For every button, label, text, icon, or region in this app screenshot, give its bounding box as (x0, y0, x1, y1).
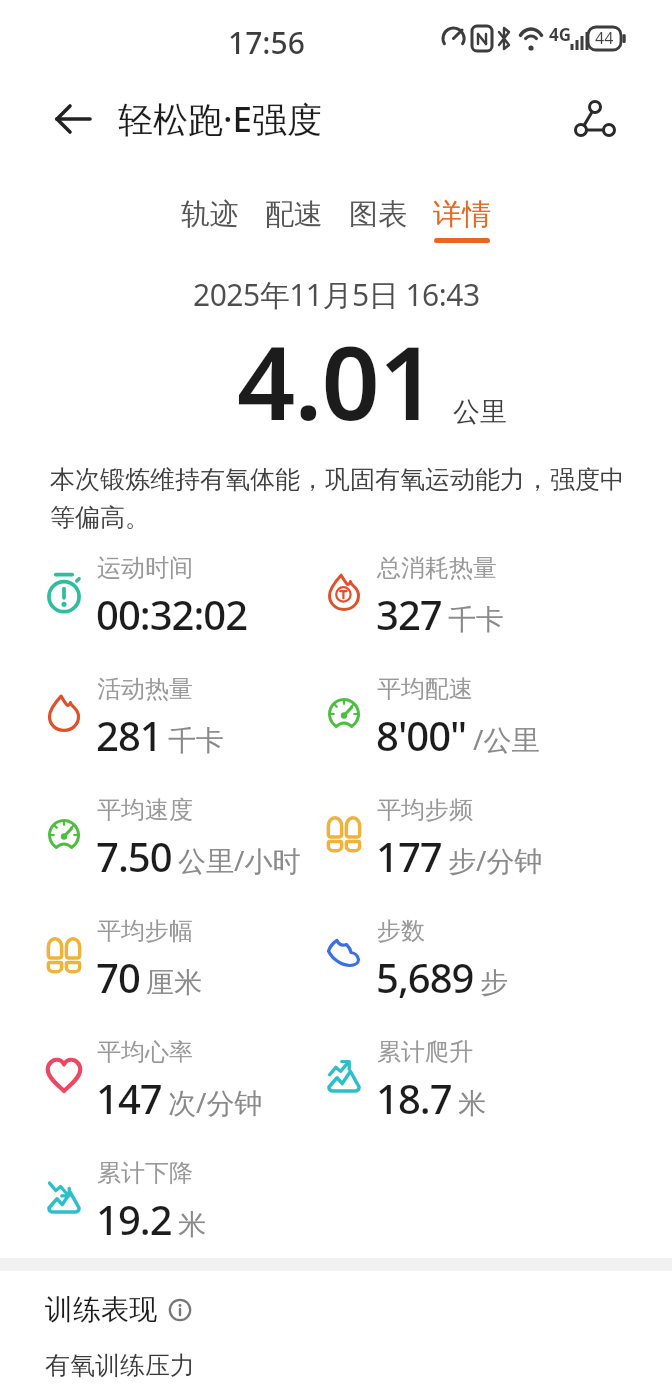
button[interactable]: 详情 (433, 196, 491, 243)
staticText: 千卡 (448, 602, 504, 637)
staticText: 米 (178, 1207, 206, 1242)
staticText: 281 (96, 708, 162, 762)
staticText: 70 (96, 950, 140, 1004)
staticText: 17:56 (228, 22, 305, 63)
staticText: 平均步频 (377, 795, 473, 825)
staticText: 米 (458, 1086, 486, 1121)
staticText: 步 (480, 965, 508, 1000)
staticText: 公里/小时 (178, 841, 301, 879)
staticText: 00:32:02 (96, 587, 248, 641)
staticText: /公里 (473, 720, 540, 758)
staticText: 本次锻炼维持有氧体能，巩固有氧运动能力，强度中 (50, 464, 625, 495)
staticText: 327 (376, 587, 442, 641)
staticText: 累计爬升 (377, 1037, 473, 1067)
staticText: 千卡 (168, 723, 224, 758)
staticText: 4.01 (237, 311, 437, 450)
staticText: 有氧训练压力 (45, 1350, 195, 1381)
staticText: 44 (595, 27, 614, 49)
staticText: 轻松跑·E强度 (118, 95, 323, 143)
staticText: 训练表现 (45, 1292, 157, 1327)
staticText: 平均配速 (377, 674, 473, 704)
button[interactable]: 训练表现 (40, 1292, 191, 1327)
staticText: 步/分钟 (448, 841, 543, 879)
staticText: 147 (96, 1071, 162, 1125)
button[interactable] (47, 93, 99, 145)
button[interactable]: 轨迹 (181, 196, 239, 243)
button[interactable]: 配速 (265, 196, 323, 243)
staticText: 平均速度 (97, 795, 193, 825)
staticText: 19.2 (96, 1192, 172, 1246)
staticText: 图表 (349, 196, 407, 233)
staticText: 18.7 (376, 1071, 452, 1125)
staticText: 运动时间 (97, 553, 193, 583)
staticText: 7.50 (96, 829, 172, 883)
button[interactable]: 图表 (349, 196, 407, 243)
staticText: 轨迹 (181, 196, 239, 233)
staticText: 公里 (453, 395, 507, 429)
staticText: 8'00" (376, 708, 467, 762)
staticText: 配速 (265, 196, 323, 233)
staticText: 2025年11月5日 16:43 (193, 274, 480, 315)
staticText: 详情 (433, 196, 491, 233)
staticText: 等偏高。 (50, 502, 150, 533)
staticText: 总消耗热量 (377, 553, 497, 583)
staticText: 次/分钟 (168, 1083, 263, 1121)
staticText: 厘米 (146, 965, 202, 1000)
staticText: 步数 (377, 916, 425, 946)
staticText: 5,689 (376, 950, 474, 1004)
staticText: 累计下降 (97, 1158, 193, 1188)
button[interactable] (568, 93, 620, 145)
staticText: 平均步幅 (97, 916, 193, 946)
staticText: 4G (549, 23, 572, 46)
staticText: 活动热量 (97, 674, 193, 704)
staticText: 平均心率 (97, 1037, 193, 1067)
staticText: 177 (376, 829, 442, 883)
